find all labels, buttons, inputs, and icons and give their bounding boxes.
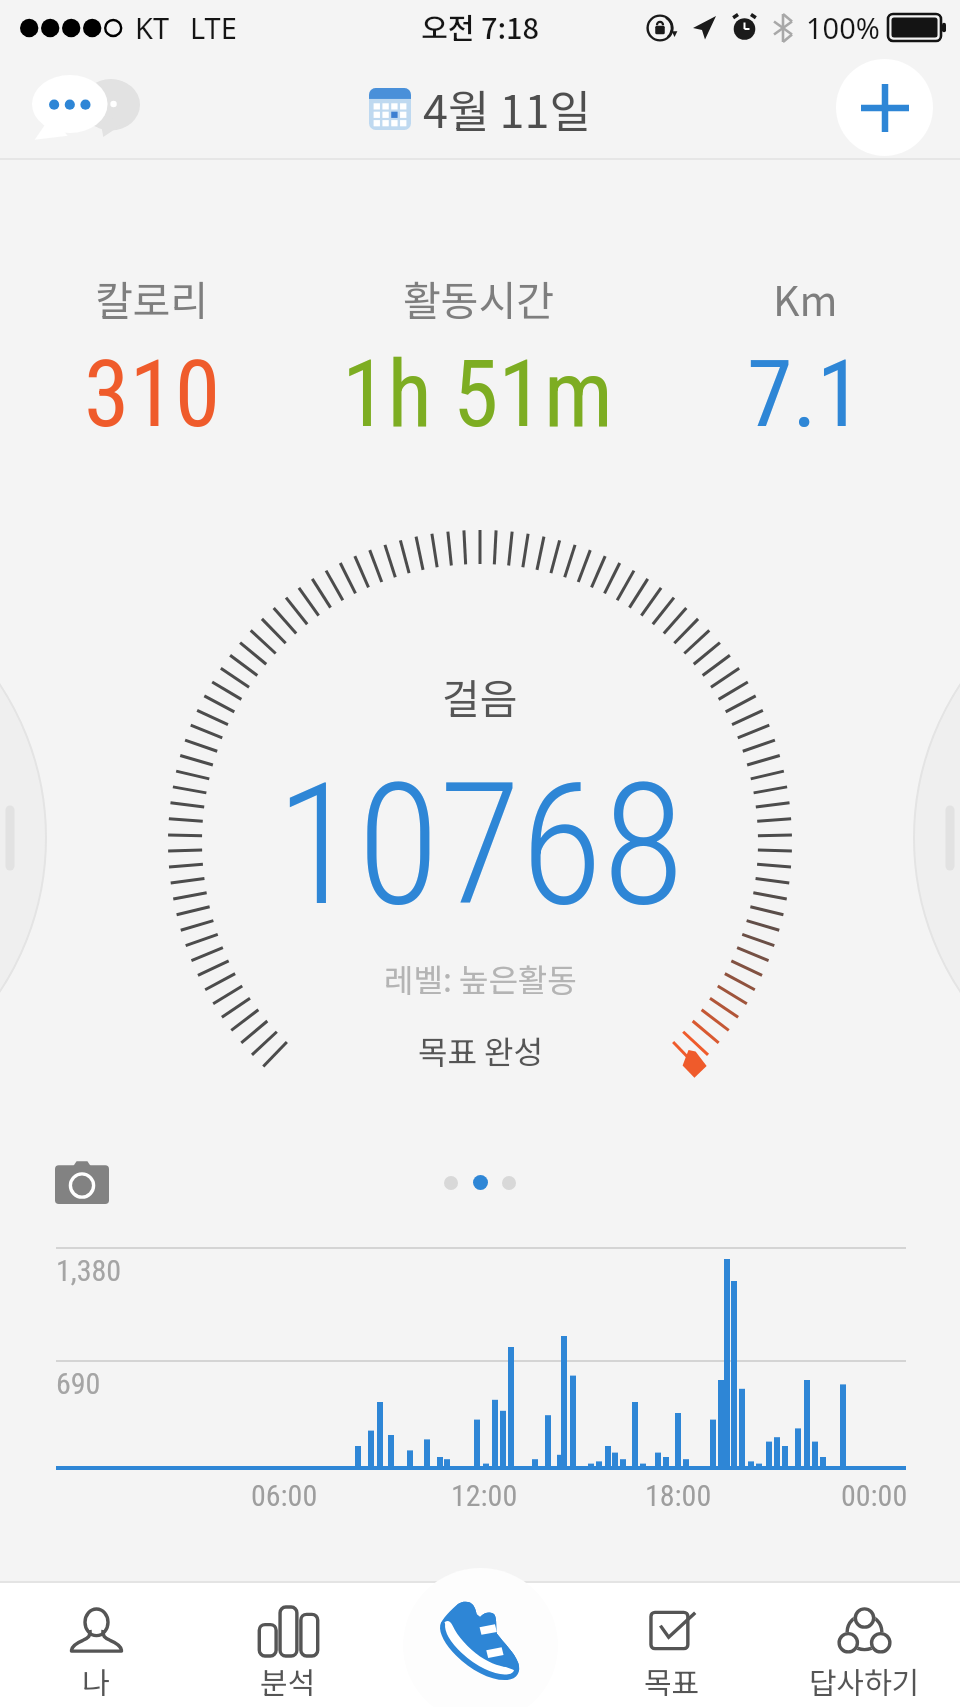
button[interactable]: Camera (50, 1154, 114, 1210)
button[interactable]: 4월 11일 (369, 76, 591, 141)
button[interactable]: 분석 (192, 1582, 384, 1707)
staticText: 나 (82, 1659, 110, 1702)
staticText: Km (773, 268, 838, 327)
staticText: 12:00 (451, 1478, 518, 1513)
staticText: 목표 (644, 1659, 700, 1702)
staticText: 00:00 (841, 1478, 908, 1513)
staticText: 4월 11일 (423, 76, 591, 141)
button[interactable]: Add (836, 59, 933, 156)
button[interactable]: 나 (0, 1582, 192, 1707)
staticText: 활동시간 (403, 268, 554, 327)
staticText: 310 (84, 341, 221, 449)
staticText: 목표 완성 (418, 1027, 543, 1073)
staticText: 분석 (260, 1659, 316, 1702)
staticText: 1h 51m (342, 341, 614, 449)
staticText: 오전 7:18 (421, 5, 540, 47)
button[interactable]: Km (645, 268, 960, 449)
staticText: 10768 (276, 747, 685, 944)
staticText: 걸음 (442, 666, 518, 725)
staticText: 칼로리 (95, 268, 209, 327)
staticText: LTE (190, 8, 237, 47)
button[interactable]: 칼로리 (0, 268, 312, 449)
staticText: 18:00 (645, 1478, 712, 1513)
staticText: 답사하기 (809, 1659, 920, 1702)
staticText: 690 (56, 1366, 101, 1401)
staticText: KT (135, 8, 170, 47)
staticText: 레벨: 높은활동 (384, 955, 577, 1001)
button[interactable]: 목표 (576, 1582, 768, 1707)
staticText: 7.1 (747, 341, 863, 449)
button[interactable]: 활동시간 (318, 268, 638, 449)
staticText: 06:00 (251, 1478, 318, 1513)
staticText: 1,380 (56, 1253, 122, 1288)
button[interactable]: 답사하기 (768, 1582, 960, 1707)
button[interactable]: Messages (26, 66, 146, 150)
button[interactable]: Activity (403, 1568, 558, 1707)
staticText: 100% (806, 8, 880, 47)
